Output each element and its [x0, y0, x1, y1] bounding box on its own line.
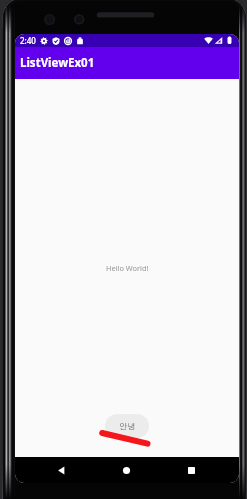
button[interactable]: Back — [48, 457, 74, 483]
staticText: Hello World! — [106, 263, 149, 273]
staticText: ListViewEx01 — [20, 55, 95, 71]
button[interactable]: 안녕 — [105, 414, 149, 438]
button[interactable]: Home — [113, 457, 139, 483]
button[interactable]: Recent apps — [178, 457, 204, 483]
staticText: 2:40 — [20, 35, 36, 46]
staticText: 안녕 — [119, 421, 136, 431]
